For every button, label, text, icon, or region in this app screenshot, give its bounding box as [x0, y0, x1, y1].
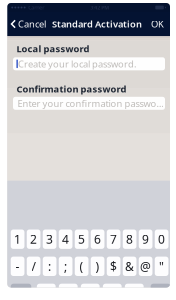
button[interactable]: ;: [59, 257, 72, 276]
button[interactable]: 0: [155, 229, 168, 249]
button[interactable]: 5: [75, 229, 88, 249]
button[interactable]: Delete: [151, 284, 171, 300]
staticText: Confirmation password: [16, 83, 126, 95]
button[interactable]: ?: [81, 284, 100, 300]
button[interactable]: ': [125, 284, 144, 300]
staticText: !: [111, 285, 114, 300]
staticText: /: [32, 258, 36, 274]
staticText: ": [159, 258, 164, 274]
staticText: Cancel: [18, 18, 46, 30]
staticText: 9: [142, 231, 149, 247]
staticText: $: [110, 258, 117, 274]
button[interactable]: 1: [11, 229, 24, 249]
staticText: 6: [94, 231, 101, 247]
button[interactable]: ": [155, 257, 168, 276]
button[interactable]: $: [107, 257, 120, 276]
staticText: 3:42 PM: [90, 4, 109, 11]
button[interactable]: @: [139, 257, 152, 276]
staticText: 0: [158, 231, 165, 247]
staticText: .: [45, 285, 48, 300]
staticText: 8: [126, 231, 133, 247]
button[interactable]: :: [43, 257, 56, 276]
staticText: ?: [88, 285, 93, 300]
staticText: Create your local password.: [18, 58, 137, 70]
staticText: Local password: [16, 42, 89, 55]
staticText: @: [140, 258, 151, 274]
staticText: ,: [67, 285, 70, 300]
staticText: ): [96, 258, 100, 274]
staticText: :: [48, 258, 51, 274]
button[interactable]: 3: [43, 229, 56, 249]
staticText: &: [125, 258, 134, 274]
staticText: 3: [46, 231, 53, 247]
staticText: OK: [151, 18, 164, 30]
button[interactable]: 6: [91, 229, 104, 249]
staticText: 1: [14, 231, 21, 247]
staticText: (: [80, 258, 84, 274]
button[interactable]: Create your local password.: [13, 57, 165, 70]
button[interactable]: Cancel: [7, 12, 49, 36]
button[interactable]: /: [27, 257, 40, 276]
button[interactable]: &: [123, 257, 136, 276]
staticText: ': [133, 285, 136, 300]
button[interactable]: .: [37, 284, 56, 300]
staticText: 2: [30, 231, 37, 247]
button[interactable]: 2: [27, 229, 40, 249]
staticText: Standard Activation: [52, 18, 142, 30]
button[interactable]: ): [91, 257, 104, 276]
button[interactable]: 8: [123, 229, 136, 249]
button[interactable]: Enter your confirmation password.: [13, 97, 165, 110]
staticText: 5: [78, 231, 85, 247]
staticText: -: [16, 258, 20, 274]
button[interactable]: #+=: [11, 284, 31, 300]
button[interactable]: -: [11, 257, 24, 276]
staticText: Enter your confirmation password.: [17, 97, 165, 109]
button[interactable]: 7: [107, 229, 120, 249]
staticText: 4: [62, 231, 69, 247]
staticText: ;: [64, 258, 67, 274]
button[interactable]: (: [75, 257, 88, 276]
button[interactable]: 9: [139, 229, 152, 249]
staticText: 7: [110, 231, 117, 247]
button[interactable]: 4: [59, 229, 72, 249]
staticText: Carrier: [28, 4, 44, 11]
button[interactable]: !: [103, 284, 122, 300]
button[interactable]: ,: [59, 284, 78, 300]
button[interactable]: OK: [146, 12, 170, 36]
